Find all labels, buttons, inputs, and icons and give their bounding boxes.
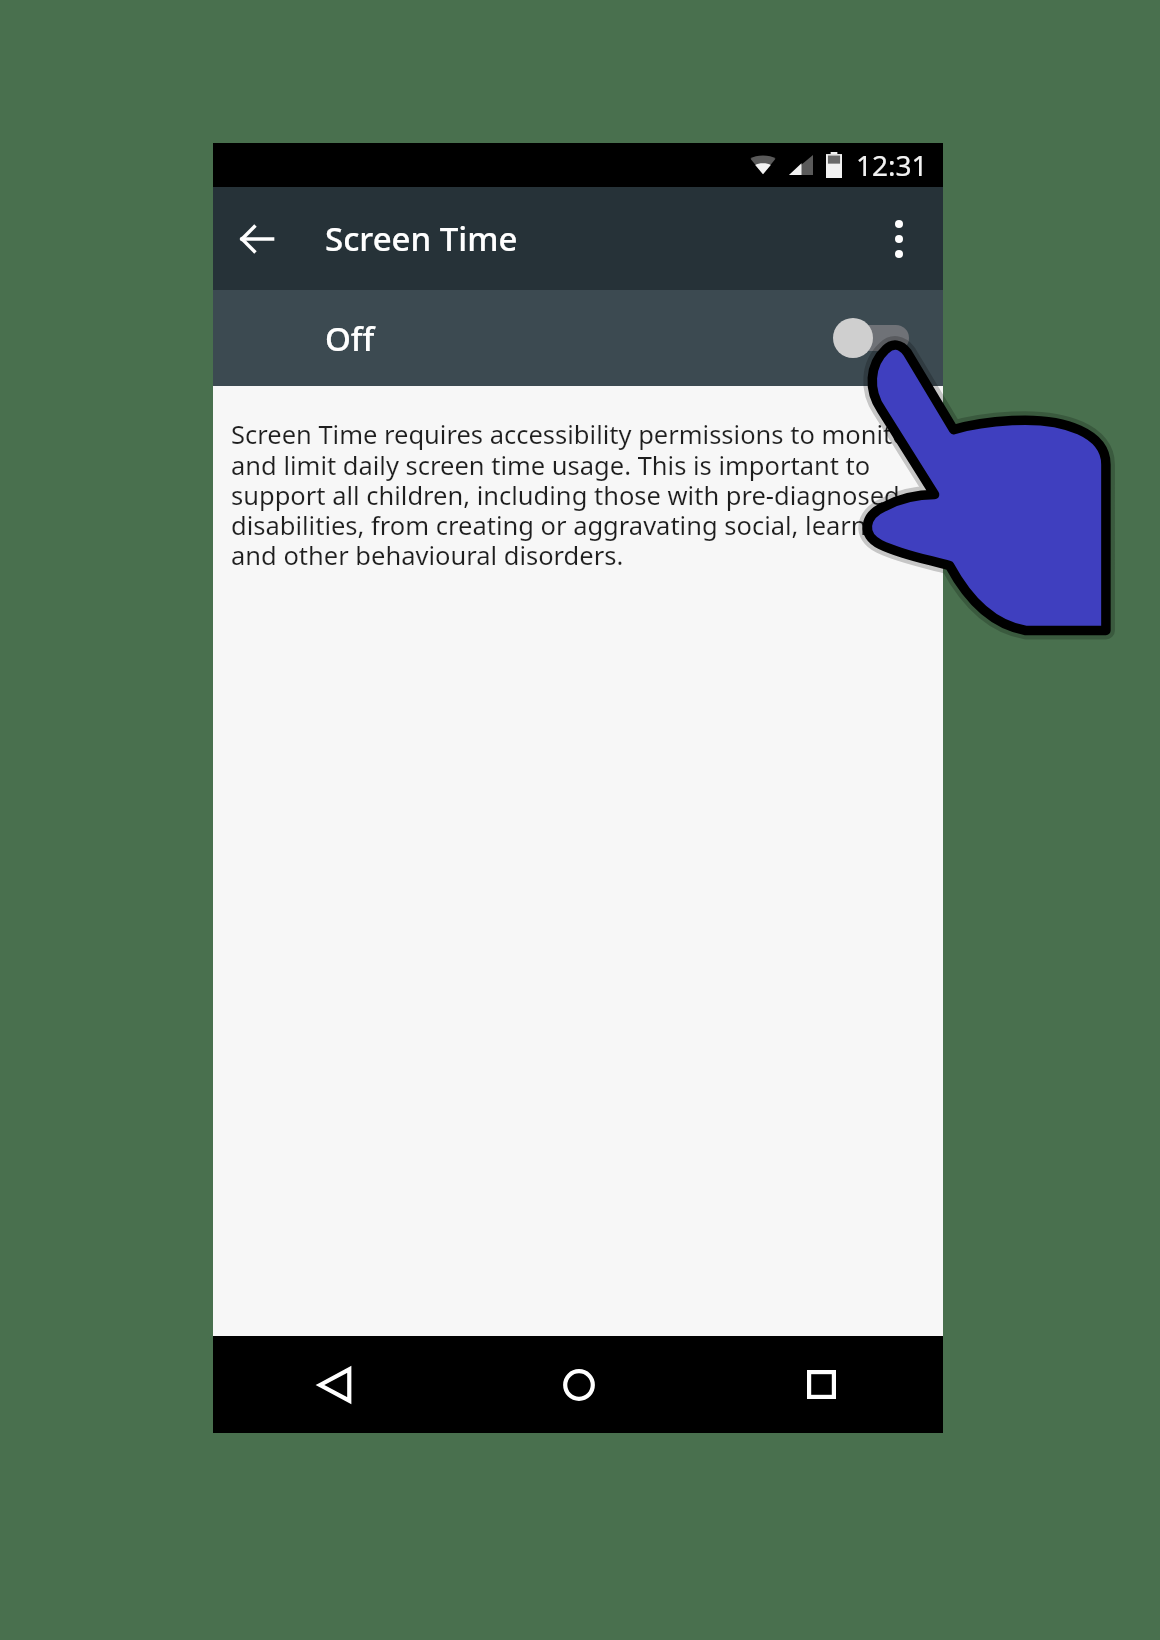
button[interactable]: Home xyxy=(457,1336,700,1433)
button[interactable]: Back xyxy=(223,205,291,273)
button[interactable]: Recent apps xyxy=(700,1336,943,1433)
staticText: Screen Time xyxy=(325,216,518,261)
staticText: Screen Time requires accessibility permi… xyxy=(231,417,929,572)
button[interactable]: More options xyxy=(867,207,931,271)
staticText: 12:31 xyxy=(856,146,928,184)
button[interactable]: Off xyxy=(213,290,943,386)
button[interactable]: Back xyxy=(213,1336,457,1433)
staticText: Off xyxy=(325,316,375,361)
other: Screen Time toggle, off xyxy=(837,314,909,362)
